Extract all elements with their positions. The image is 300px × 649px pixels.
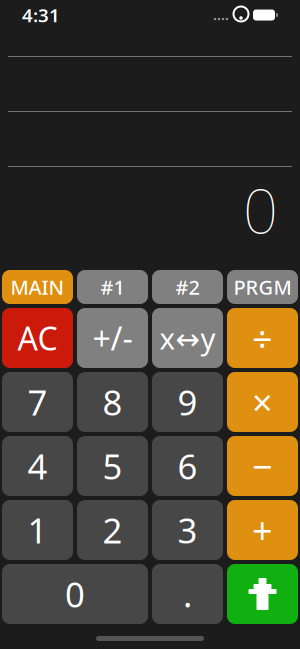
staticText: 4:31 [22, 3, 60, 27]
button[interactable]: 3 [152, 500, 223, 560]
staticText: .... [213, 6, 229, 24]
button[interactable]: PRGM [227, 270, 298, 304]
staticText: 2 [102, 507, 122, 553]
staticText: 4 [27, 443, 47, 489]
button[interactable]: 0 [2, 564, 148, 624]
button[interactable]: #2 [152, 270, 223, 304]
staticText: PRGM [233, 274, 291, 300]
button[interactable]: 6 [152, 436, 223, 496]
staticText: 3 [177, 507, 197, 553]
staticText: − [252, 442, 273, 490]
staticText: AC [17, 317, 57, 359]
button[interactable]: × [227, 372, 298, 432]
staticText: 7 [27, 379, 47, 425]
staticText: + [252, 506, 273, 554]
button[interactable]: . [152, 564, 223, 624]
staticText: 8 [102, 379, 122, 425]
staticText: #1 [100, 274, 124, 300]
button[interactable]: 9 [152, 372, 223, 432]
button[interactable]: MAIN [2, 270, 73, 304]
staticText: × [252, 378, 273, 426]
button[interactable]: 1 [2, 500, 73, 560]
staticText: #2 [175, 274, 199, 300]
staticText: . [183, 571, 192, 617]
staticText: x↔y [159, 318, 215, 357]
button[interactable]: ÷ [227, 308, 298, 368]
button[interactable]: +/- [77, 308, 148, 368]
button[interactable]: 5 [77, 436, 148, 496]
staticText: +/- [92, 317, 132, 359]
button[interactable]: 7 [2, 372, 73, 432]
button[interactable]: + [227, 500, 298, 560]
staticText: ÷ [252, 314, 273, 362]
button[interactable]: x↔y [152, 308, 223, 368]
button[interactable]: Enter [227, 564, 298, 624]
staticText: 9 [177, 379, 197, 425]
button[interactable]: AC [2, 308, 73, 368]
button[interactable]: 2 [77, 500, 148, 560]
staticText: 0 [65, 571, 85, 617]
button[interactable]: 4 [2, 436, 73, 496]
staticText: 6 [177, 443, 197, 489]
button[interactable]: − [227, 436, 298, 496]
staticText: 1 [27, 507, 47, 553]
button[interactable]: 8 [77, 372, 148, 432]
staticText: MAIN [10, 274, 64, 300]
staticText: 5 [102, 443, 122, 489]
button[interactable]: #1 [77, 270, 148, 304]
staticText: 0 [243, 169, 278, 250]
